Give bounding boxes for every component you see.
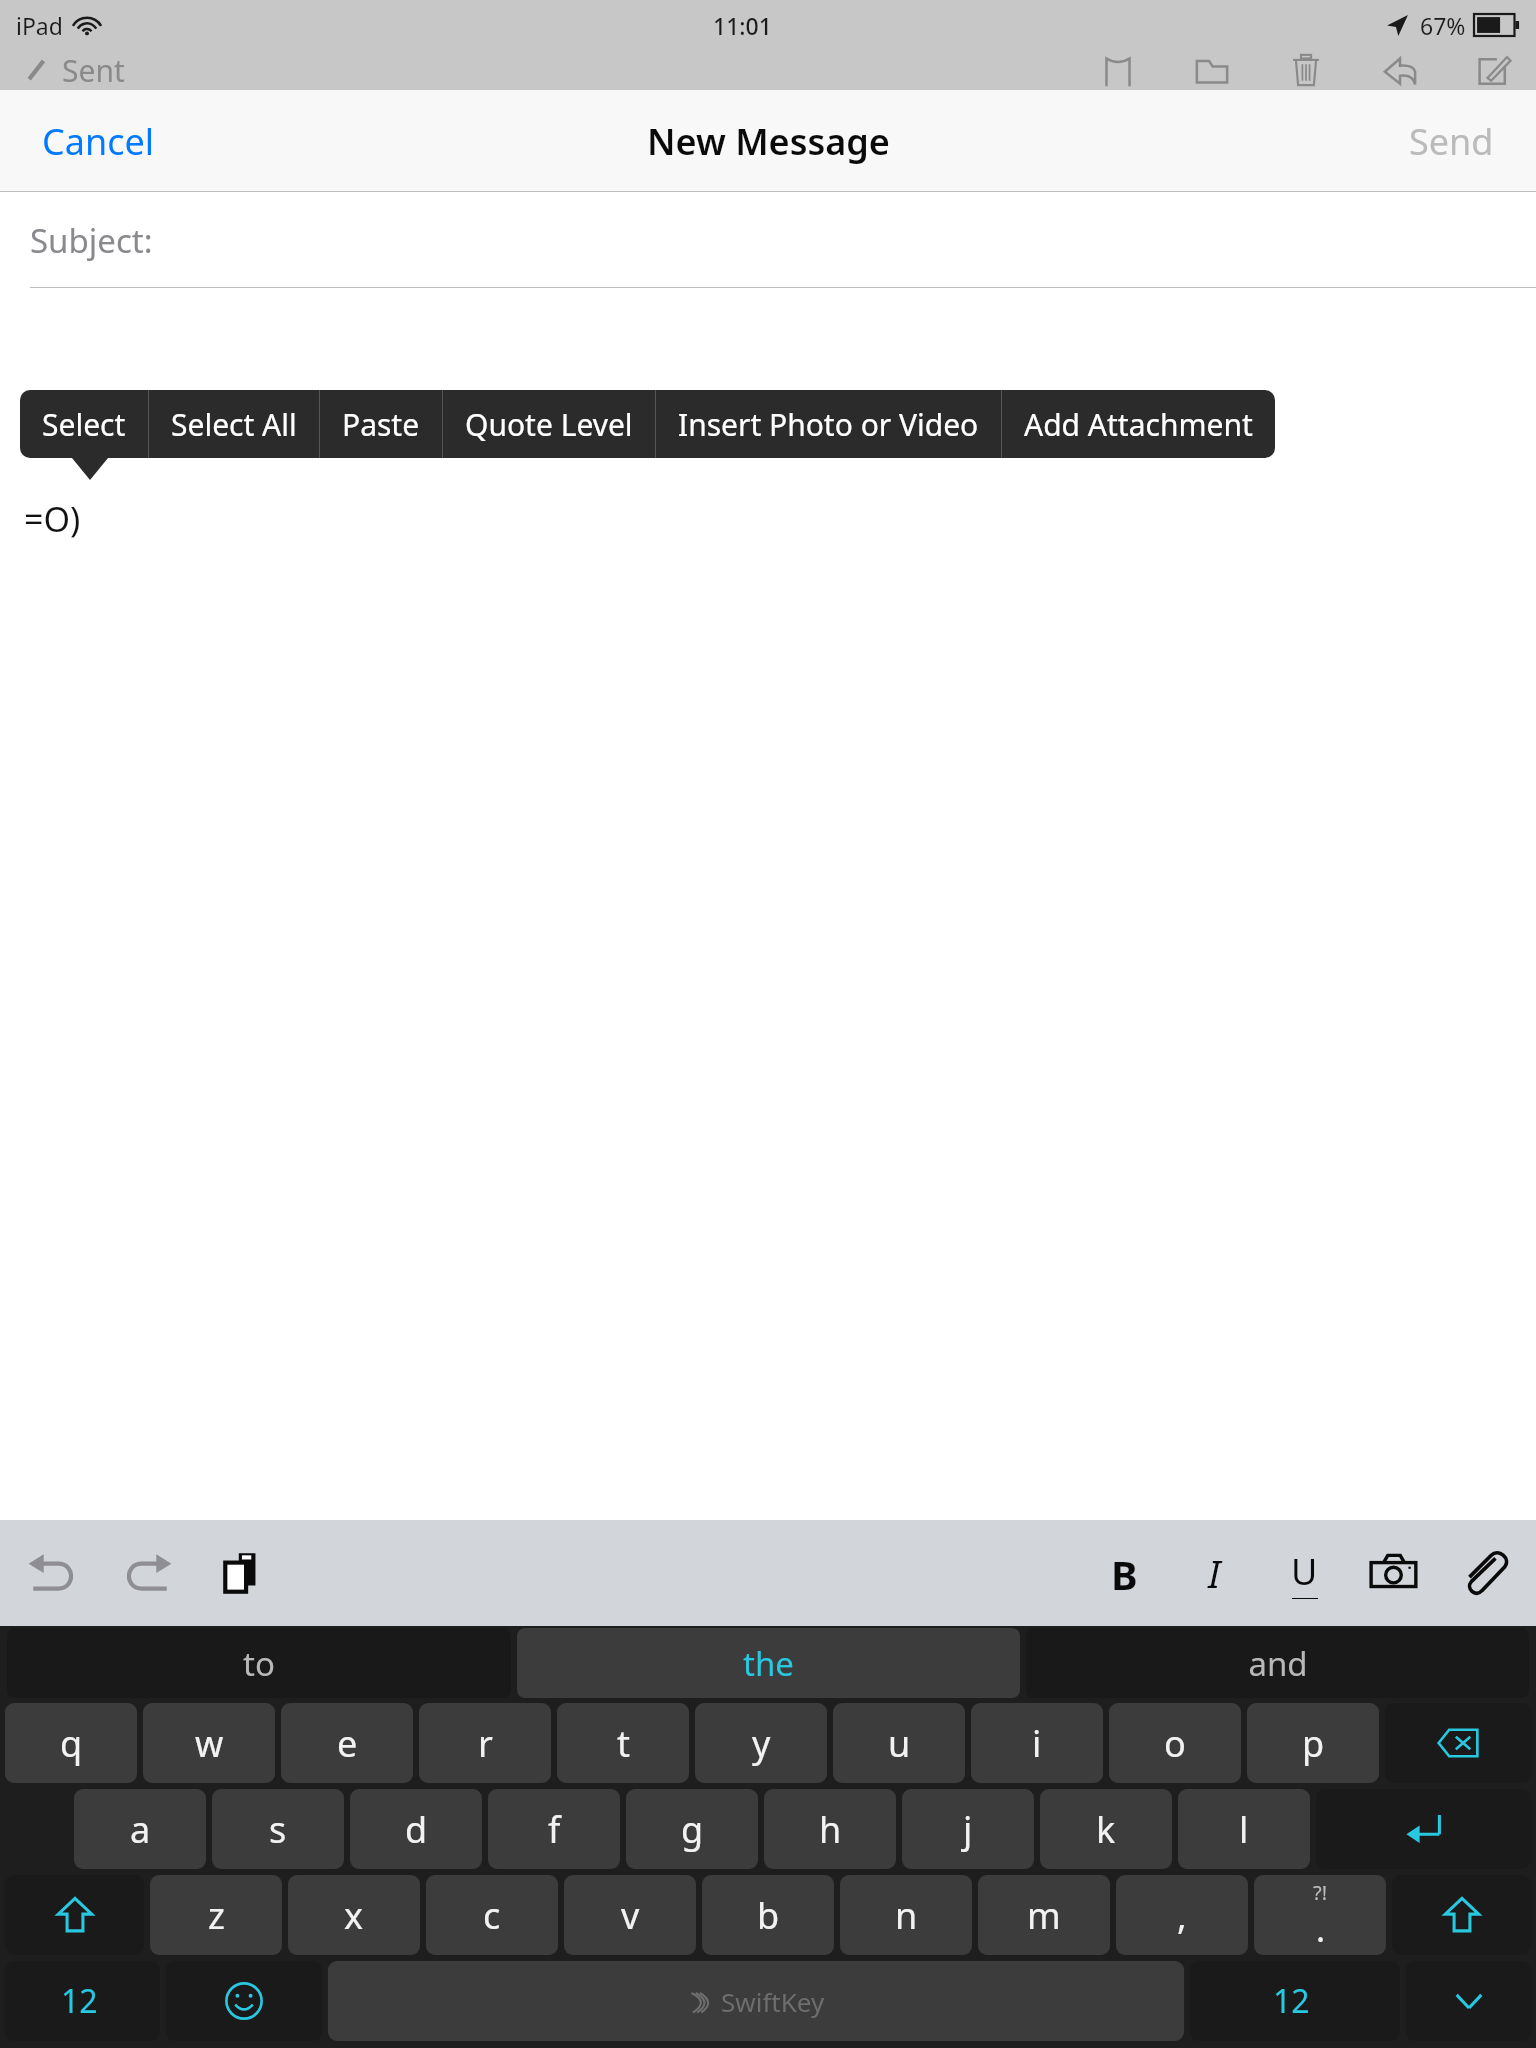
button[interactable]: b bbox=[702, 1875, 834, 1955]
staticText: x bbox=[344, 1891, 364, 1940]
staticText: Add Attachment bbox=[1024, 404, 1253, 445]
staticText: v bbox=[621, 1891, 640, 1940]
staticText: w bbox=[195, 1719, 224, 1768]
staticText: y bbox=[752, 1719, 771, 1768]
staticText: 123 bbox=[61, 1979, 105, 2023]
button[interactable]: and bbox=[1026, 1628, 1529, 1698]
button[interactable]: Space bbox=[328, 1961, 1184, 2041]
button[interactable]: w bbox=[143, 1703, 275, 1783]
button[interactable]: the bbox=[517, 1628, 1020, 1698]
staticText: B bbox=[1111, 1547, 1138, 1599]
button[interactable]: l bbox=[1178, 1789, 1310, 1869]
button[interactable]: y bbox=[695, 1703, 827, 1783]
staticText: =O) bbox=[24, 496, 81, 542]
staticText: , bbox=[1177, 1891, 1187, 1940]
button[interactable]: a bbox=[74, 1789, 206, 1869]
button[interactable]: Numbers bbox=[5, 1961, 160, 2041]
button[interactable]: Paste bbox=[320, 390, 442, 458]
button[interactable]: Numbers bbox=[1190, 1961, 1400, 2041]
staticText: d bbox=[405, 1805, 428, 1854]
button[interactable]: r bbox=[419, 1703, 551, 1783]
button[interactable]: Bold bbox=[1086, 1530, 1162, 1616]
button[interactable]: o bbox=[1109, 1703, 1241, 1783]
button[interactable]: g bbox=[626, 1789, 758, 1869]
button[interactable]: Undo bbox=[14, 1530, 90, 1616]
button[interactable]: f bbox=[488, 1789, 620, 1869]
staticText: to bbox=[243, 1641, 275, 1686]
staticText: i bbox=[1032, 1719, 1042, 1768]
button[interactable]: p bbox=[1247, 1703, 1379, 1783]
button[interactable]: Send bbox=[1387, 103, 1516, 180]
button[interactable]: Insert Photo or Video bbox=[656, 390, 1001, 458]
button[interactable]: Select All bbox=[149, 390, 319, 458]
staticText: f bbox=[548, 1805, 561, 1854]
button[interactable]: Shift bbox=[1392, 1875, 1531, 1955]
button[interactable]: k bbox=[1040, 1789, 1172, 1869]
button[interactable]: Cancel bbox=[20, 103, 177, 180]
staticText: j bbox=[963, 1805, 973, 1854]
button[interactable]: h bbox=[764, 1789, 896, 1869]
staticText: U bbox=[1291, 1547, 1318, 1596]
staticText: SwiftKey bbox=[721, 1984, 825, 2019]
staticText: 67% bbox=[1420, 10, 1466, 41]
button[interactable]: s bbox=[212, 1789, 344, 1869]
button[interactable]: to bbox=[7, 1628, 511, 1698]
button[interactable]: z bbox=[150, 1875, 282, 1955]
staticText: Select bbox=[42, 404, 126, 445]
staticText: . bbox=[1316, 1906, 1326, 1952]
staticText: Select All bbox=[171, 404, 297, 445]
staticText: Send bbox=[1409, 117, 1494, 166]
button[interactable]: Underline bbox=[1266, 1530, 1342, 1616]
button[interactable]: Backspace bbox=[1385, 1703, 1531, 1783]
staticText: n bbox=[895, 1891, 918, 1940]
button[interactable]: Redo bbox=[110, 1530, 186, 1616]
staticText: Subject: bbox=[30, 218, 153, 263]
button[interactable]: Italic bbox=[1176, 1530, 1252, 1616]
staticText: k bbox=[1096, 1805, 1116, 1854]
staticText: Paste bbox=[342, 404, 420, 445]
staticText: a bbox=[130, 1805, 151, 1854]
staticText: e bbox=[337, 1719, 358, 1768]
button[interactable]: u bbox=[833, 1703, 965, 1783]
button[interactable]: Emoji bbox=[166, 1961, 322, 2041]
button[interactable]: e bbox=[281, 1703, 413, 1783]
button[interactable]: c bbox=[426, 1875, 558, 1955]
button[interactable]: n bbox=[840, 1875, 972, 1955]
staticText: t bbox=[617, 1719, 630, 1768]
button[interactable]: Attach bbox=[1446, 1530, 1522, 1616]
staticText: p bbox=[1302, 1719, 1325, 1768]
button[interactable]: Add Attachment bbox=[1002, 390, 1275, 458]
button[interactable]: Paste bbox=[206, 1530, 282, 1616]
staticText: q bbox=[60, 1719, 83, 1768]
staticText: h bbox=[819, 1805, 842, 1854]
staticText: Insert Photo or Video bbox=[678, 404, 979, 445]
staticText: u bbox=[888, 1719, 911, 1768]
button[interactable]: q bbox=[5, 1703, 137, 1783]
staticText: 123 bbox=[1273, 1979, 1317, 2023]
button[interactable]: d bbox=[350, 1789, 482, 1869]
staticText: Quote Level bbox=[465, 404, 633, 445]
button[interactable]: i bbox=[971, 1703, 1103, 1783]
button[interactable]: Shift bbox=[5, 1875, 144, 1955]
staticText: Sent bbox=[62, 50, 125, 90]
button[interactable]: m bbox=[978, 1875, 1110, 1955]
staticText: and bbox=[1248, 1641, 1308, 1686]
button[interactable]: t bbox=[557, 1703, 689, 1783]
button[interactable]: Select bbox=[20, 390, 148, 458]
staticText: m bbox=[1027, 1891, 1061, 1940]
staticText: New Message bbox=[647, 117, 890, 166]
button[interactable]: x bbox=[288, 1875, 420, 1955]
staticText: c bbox=[483, 1891, 501, 1940]
staticText: 11:01 bbox=[713, 10, 772, 41]
button[interactable]: Camera bbox=[1356, 1530, 1432, 1616]
button[interactable]: Quote Level bbox=[443, 390, 655, 458]
button[interactable]: ?! bbox=[1254, 1875, 1386, 1955]
button[interactable]: Hide keyboard bbox=[1406, 1961, 1531, 2041]
button[interactable]: j bbox=[902, 1789, 1034, 1869]
staticText: z bbox=[208, 1891, 225, 1940]
staticText: r bbox=[478, 1719, 493, 1768]
button[interactable]: Enter bbox=[1316, 1789, 1531, 1869]
button[interactable]: , bbox=[1116, 1875, 1248, 1955]
staticText: s bbox=[269, 1805, 287, 1854]
button[interactable]: v bbox=[564, 1875, 696, 1955]
